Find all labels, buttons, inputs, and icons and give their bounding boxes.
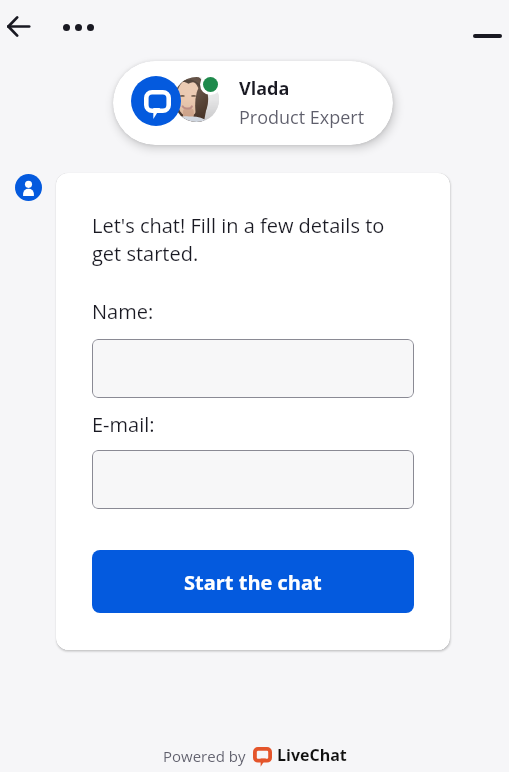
button[interactable]: More options: [55, 4, 100, 49]
staticText: Vlada: [239, 76, 290, 101]
button[interactable]: Name input: [92, 339, 414, 398]
staticText: LiveChat: [277, 744, 347, 766]
button[interactable]: Back: [0, 4, 41, 49]
staticText: Product Expert: [239, 105, 365, 130]
button[interactable]: Powered by: [163, 745, 347, 767]
staticText: Powered by: [163, 746, 246, 766]
button[interactable]: Start the chat: [92, 550, 414, 613]
staticText: Let's chat! Fill in a few details to get…: [92, 212, 414, 267]
button[interactable]: E-mail input: [92, 450, 414, 509]
staticText: Start the chat: [184, 569, 322, 596]
staticText: Name:: [92, 298, 154, 325]
button[interactable]: Vlada: [113, 61, 393, 145]
button[interactable]: Minimize: [465, 15, 509, 57]
staticText: E-mail:: [92, 411, 155, 438]
